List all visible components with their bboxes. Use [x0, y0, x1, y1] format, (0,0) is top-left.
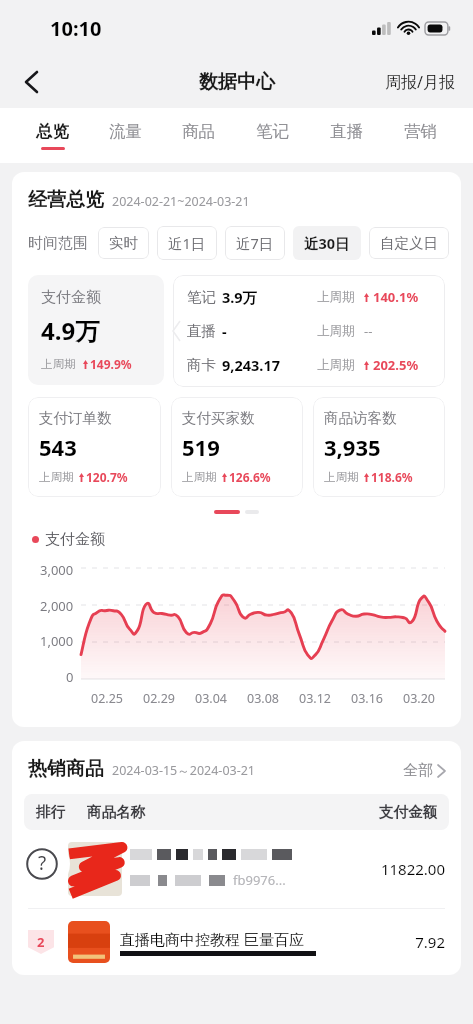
staticText: 总览 — [36, 121, 69, 142]
button[interactable]: 商品 — [162, 108, 235, 163]
staticText: fb9976... — [233, 871, 286, 889]
staticText: 2024-02-21~2024-03-21 — [112, 193, 250, 210]
button[interactable]: 支付买家数 — [171, 397, 303, 497]
staticText: 营销 — [404, 121, 437, 142]
staticText: 03.20 — [403, 690, 435, 707]
button[interactable]: Back — [8, 59, 54, 105]
staticText: 149.9% — [90, 356, 132, 372]
staticText: 商品 — [182, 121, 215, 142]
button[interactable]: 2 — [12, 909, 461, 975]
staticText: - — [222, 321, 227, 341]
staticText: 上周期 — [317, 357, 355, 373]
staticText: 支付订单数 — [39, 409, 112, 427]
button[interactable]: 1 — [12, 830, 461, 908]
staticText: 4.9万 — [41, 314, 100, 347]
button[interactable]: 商品访客数 — [313, 397, 445, 497]
staticText: 3,000 — [40, 561, 74, 579]
staticText: 1,000 — [40, 632, 74, 650]
button[interactable]: 支付金额 — [28, 275, 164, 385]
staticText: ? — [38, 850, 47, 876]
staticText: 周报/月报 — [385, 71, 455, 93]
staticText: 上周期 — [182, 470, 217, 484]
button[interactable]: 近1日 — [157, 226, 217, 260]
staticText: 近7日 — [236, 233, 274, 253]
button[interactable]: 直播 — [309, 108, 383, 163]
staticText: 数据中心 — [199, 70, 275, 94]
staticText: 经营总览 — [28, 188, 104, 212]
staticText: 0 — [66, 668, 74, 686]
staticText: 03.16 — [351, 690, 383, 707]
staticText: 7.92 — [415, 932, 445, 952]
staticText: 03.12 — [299, 690, 331, 707]
button[interactable]: Help — [14, 836, 70, 892]
staticText: 140.1% — [373, 288, 419, 306]
staticText: 9,243.17 — [222, 355, 280, 375]
staticText: 商品访客数 — [324, 409, 397, 427]
staticText: 近30日 — [304, 233, 350, 253]
staticText: 直播 — [330, 121, 363, 142]
button[interactable]: 流量 — [89, 108, 162, 163]
button[interactable]: 营销 — [383, 108, 457, 163]
staticText: -- — [364, 322, 373, 340]
staticText: 直播 — [187, 322, 216, 340]
staticText: 支付金额 — [41, 288, 101, 307]
button[interactable]: 自定义日 — [369, 227, 449, 259]
button[interactable]: 支付订单数 — [28, 397, 161, 497]
staticText: 10:10 — [50, 15, 102, 42]
staticText: 02.25 — [91, 690, 123, 707]
button[interactable]: 实时 — [98, 227, 149, 259]
button[interactable]: 总览 — [16, 108, 89, 163]
staticText: 03.08 — [247, 690, 279, 707]
staticText: 202.5% — [373, 356, 419, 374]
staticText: 流量 — [109, 121, 142, 142]
staticText: 2,000 — [40, 597, 74, 615]
button[interactable]: 近7日 — [225, 226, 285, 260]
staticText: 02.29 — [143, 690, 175, 707]
staticText: 上周期 — [41, 357, 76, 371]
staticText: 上周期 — [324, 470, 359, 484]
staticText: 商品名称 — [87, 803, 145, 821]
staticText: 543 — [39, 432, 77, 462]
button[interactable]: 笔记 — [235, 108, 309, 163]
staticText: 上周期 — [39, 470, 74, 484]
staticText: 上周期 — [317, 289, 355, 305]
staticText: 519 — [182, 432, 220, 462]
staticText: 实时 — [109, 234, 138, 252]
staticText: 支付金额 — [379, 803, 437, 821]
staticText: 全部 — [403, 761, 433, 780]
button[interactable]: 周报/月报 — [381, 65, 459, 99]
staticText: 3.9万 — [222, 287, 258, 307]
staticText: 笔记 — [187, 288, 216, 306]
button[interactable]: 全部 — [403, 761, 445, 781]
staticText: 126.6% — [229, 469, 271, 485]
button[interactable]: 近30日 — [293, 226, 361, 260]
staticText: 11822.00 — [380, 859, 445, 879]
staticText: 支付金额 — [45, 530, 105, 549]
staticText: 上周期 — [317, 323, 355, 339]
staticText: 120.7% — [86, 469, 128, 485]
staticText: 近1日 — [168, 233, 206, 253]
staticText: 1 — [37, 860, 45, 878]
staticText: 支付买家数 — [182, 409, 255, 427]
staticText: 直播电商中控教程 巨量百应 — [120, 929, 304, 949]
staticText: 排行 — [36, 803, 65, 821]
staticText: 2024-03-15～2024-03-21 — [112, 762, 256, 779]
staticText: 自定义日 — [380, 234, 438, 252]
staticText: 3,935 — [324, 432, 381, 462]
staticText: 118.6% — [371, 469, 413, 485]
staticText: 商卡 — [187, 356, 216, 374]
staticText: 时间范围 — [28, 234, 88, 253]
staticText: 2 — [37, 933, 45, 951]
staticText: 热销商品 — [28, 757, 104, 781]
staticText: 03.04 — [195, 690, 227, 707]
staticText: 笔记 — [256, 121, 289, 142]
